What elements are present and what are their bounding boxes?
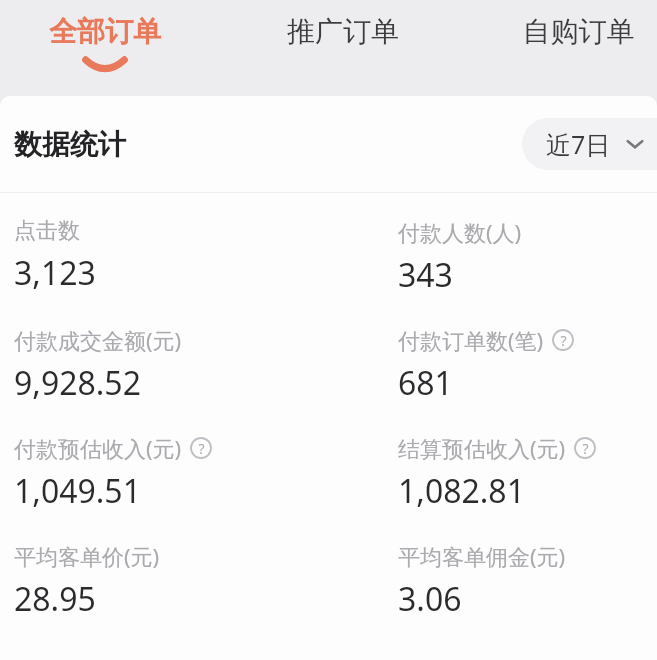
staticText: 343 (398, 253, 453, 297)
button[interactable]: 付款预估收入(元) (14, 433, 398, 513)
button[interactable]: 结算预估收入(元) (398, 433, 657, 513)
other: Help (574, 437, 596, 459)
staticText: 3,123 (14, 251, 96, 295)
staticText: 推广订单 (261, 14, 425, 49)
staticText: 结算预估收入(元) (398, 433, 566, 463)
other: Help (552, 329, 574, 351)
button[interactable]: 全部订单 (23, 0, 187, 96)
staticText: 数据统计 (14, 127, 126, 162)
staticText: 28.95 (14, 577, 96, 621)
button[interactable]: 自购订单 (500, 0, 657, 96)
staticText: ? (582, 439, 589, 458)
other: Help (190, 437, 212, 459)
staticText: 平均客单佣金(元) (398, 541, 566, 571)
staticText: 1,082.81 (398, 469, 525, 513)
staticText: 1,049.51 (14, 469, 141, 513)
staticText: 自购订单 (500, 14, 657, 49)
staticText: ? (198, 439, 205, 458)
button[interactable]: 近7日 (522, 118, 657, 170)
staticText: 9,928.52 (14, 361, 141, 405)
staticText: 付款预估收入(元) (14, 433, 182, 463)
staticText: 近7日 (546, 127, 611, 161)
button[interactable]: 平均客单价(元) (14, 541, 398, 621)
staticText: 平均客单价(元) (14, 541, 160, 571)
staticText: 681 (398, 361, 453, 405)
staticText: 3.06 (398, 577, 462, 621)
staticText: 点击数 (14, 217, 80, 245)
button[interactable]: 付款成交金额(元) (14, 325, 398, 405)
staticText: 付款订单数(笔) (398, 325, 544, 355)
button[interactable]: 点击数 (14, 217, 398, 295)
staticText: 付款成交金额(元) (14, 325, 182, 355)
button[interactable]: 付款订单数(笔) (398, 325, 657, 405)
staticText: ? (560, 331, 567, 350)
button[interactable]: 推广订单 (261, 0, 425, 96)
other: Expand date range (625, 134, 645, 154)
staticText: 全部订单 (23, 14, 187, 49)
staticText: 付款人数(人) (398, 217, 522, 247)
button[interactable]: 平均客单佣金(元) (398, 541, 657, 621)
button[interactable]: 付款人数(人) (398, 217, 657, 297)
